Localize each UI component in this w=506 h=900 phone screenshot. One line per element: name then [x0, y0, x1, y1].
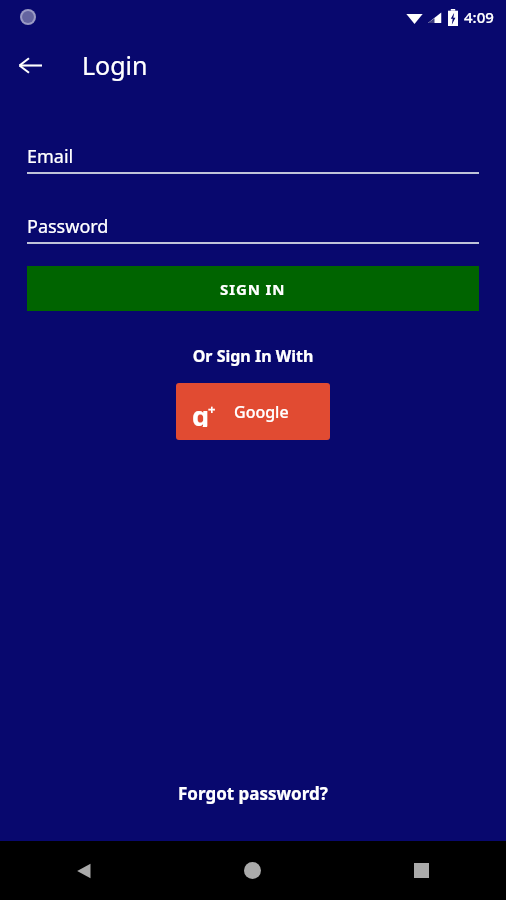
button[interactable]: Home — [168, 841, 337, 900]
staticText: Google — [234, 401, 289, 423]
button[interactable]: SIGN IN — [27, 266, 479, 311]
button[interactable]: Password — [27, 210, 479, 242]
staticText: Password — [27, 214, 109, 239]
button[interactable]: Back — [0, 841, 168, 900]
staticText: g — [192, 397, 210, 427]
staticText: Login — [82, 48, 148, 82]
button[interactable]: Email — [27, 140, 479, 172]
staticText: + — [208, 400, 216, 418]
button[interactable]: Recent apps — [337, 841, 506, 900]
button[interactable]: g — [176, 383, 330, 440]
button[interactable]: Forgot password? — [166, 776, 340, 811]
staticText: Forgot password? — [178, 782, 328, 805]
staticText: SIGN IN — [220, 279, 286, 299]
staticText: Or Sign In With — [0, 345, 506, 367]
staticText: Email — [27, 144, 74, 169]
button[interactable]: Navigate up — [6, 41, 54, 89]
staticText: 4:09 — [464, 7, 494, 27]
